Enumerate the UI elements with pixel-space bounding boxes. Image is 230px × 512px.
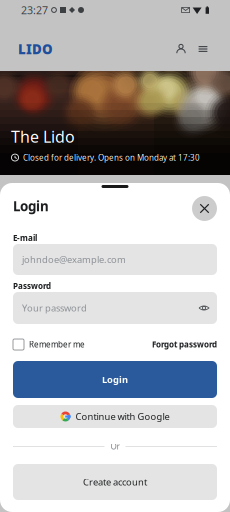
button[interactable]: Login	[13, 361, 217, 398]
button[interactable]: Forgot password	[152, 339, 217, 350]
button[interactable]: Create account	[13, 464, 217, 500]
staticText: LIDO	[18, 40, 53, 58]
button[interactable]: Continue with Google	[13, 405, 217, 428]
staticText: Login	[102, 373, 128, 386]
staticText: The Lido	[11, 126, 75, 147]
staticText: Create account	[83, 476, 147, 488]
button[interactable]: Remember me	[13, 339, 85, 350]
staticText: Your password	[22, 302, 87, 314]
staticText: Remember me	[29, 339, 85, 350]
staticText: Closed for delivery. Opens on Monday at …	[23, 152, 200, 163]
button[interactable]: Close	[192, 196, 217, 221]
button[interactable]: Menu	[192, 34, 214, 64]
staticText: Continue with Google	[75, 410, 169, 423]
staticText: Password	[13, 281, 51, 291]
staticText: 23:27	[21, 3, 48, 17]
button[interactable]: Account	[170, 34, 192, 64]
staticText: johndoe@example.com	[22, 253, 126, 266]
staticText: Login	[13, 197, 49, 215]
staticText: Or	[110, 441, 119, 452]
staticText: E-mail	[13, 233, 37, 243]
staticText: Forgot password	[152, 339, 217, 350]
